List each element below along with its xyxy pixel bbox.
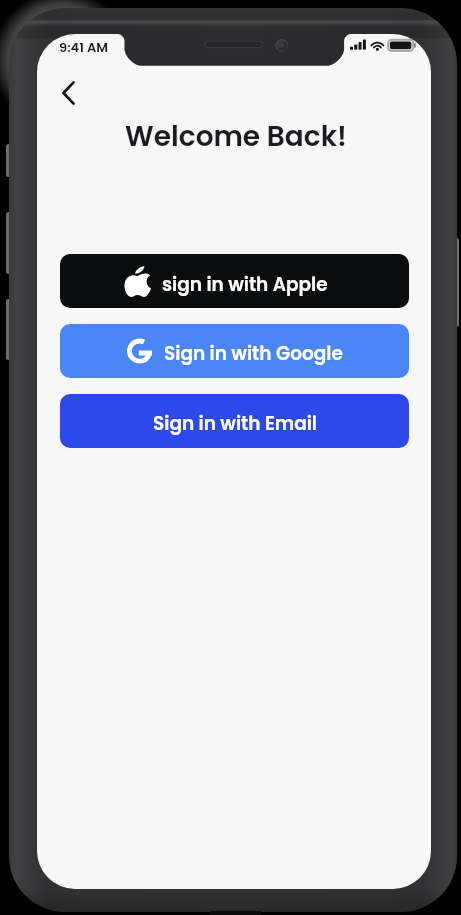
staticText: sign in with Apple: [162, 272, 328, 298]
staticText: Welcome Back!: [39, 117, 431, 156]
button[interactable]: sign in with Apple: [60, 254, 409, 308]
button[interactable]: Sign in with Google: [60, 324, 409, 378]
staticText: 9:41 AM: [59, 38, 108, 56]
staticText: Sign in with Email: [153, 411, 317, 437]
button[interactable]: Sign in with Email: [60, 394, 409, 448]
staticText: Sign in with Google: [164, 341, 343, 367]
button[interactable]: Back: [46, 71, 90, 115]
